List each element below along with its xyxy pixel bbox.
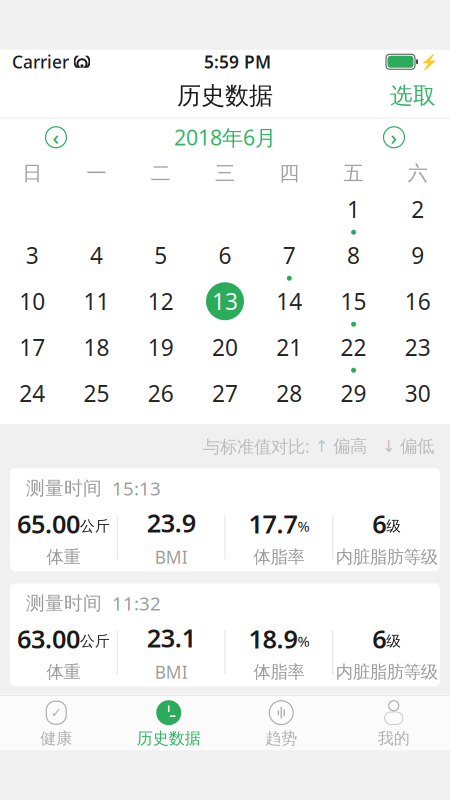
staticText: ↑ [310, 437, 333, 455]
button[interactable]: 27 [193, 374, 257, 420]
button[interactable]: 趋势 [225, 699, 337, 749]
staticText: 15 [341, 286, 367, 316]
staticText: 26 [148, 378, 174, 408]
button[interactable]: 13 [193, 282, 257, 328]
staticText: 我的 [378, 729, 410, 748]
staticText: 14 [276, 286, 302, 316]
staticText: Carrier [12, 50, 69, 73]
button[interactable]: 上个月 [42, 123, 70, 151]
staticText: 22 [341, 332, 367, 362]
button[interactable]: 22 [321, 328, 386, 374]
button[interactable]: 12 [129, 282, 193, 328]
staticText: 选取 [390, 82, 436, 110]
staticText: 5:59 PM [204, 50, 271, 73]
staticText: ✓ [51, 705, 62, 720]
staticText: 2018年6月 [174, 123, 276, 151]
staticText: › [390, 124, 397, 151]
staticText: 趋势 [265, 729, 297, 748]
staticText: BMI [155, 661, 188, 684]
staticText: 3 [26, 240, 39, 270]
staticText: 10 [19, 286, 45, 316]
button[interactable]: 28 [257, 374, 321, 420]
staticText: % [297, 516, 309, 536]
staticText: 六 [408, 161, 428, 186]
staticText: 30 [405, 378, 431, 408]
button[interactable]: 测量时间 [10, 468, 440, 571]
button[interactable]: 1 [321, 190, 386, 236]
staticText: 内脏脂肪等级 [336, 546, 438, 568]
staticText: 25 [83, 378, 109, 408]
staticText: 偏低 [400, 436, 434, 457]
button[interactable]: 我的 [337, 699, 450, 749]
button[interactable]: 测量时间 [10, 583, 440, 686]
staticText: 18 [83, 332, 109, 362]
staticText: 日 [22, 161, 42, 186]
staticText: 1 [347, 194, 360, 224]
button[interactable]: 20 [193, 328, 257, 374]
button[interactable]: 10 [0, 282, 64, 328]
button[interactable]: 历史数据 [112, 699, 225, 749]
staticText: 测量时间 [26, 592, 102, 615]
button[interactable]: 17 [0, 328, 64, 374]
staticText: 一 [86, 161, 106, 186]
button[interactable]: 选取 [376, 74, 450, 118]
button[interactable]: 9 [386, 236, 450, 282]
button[interactable]: 16 [386, 282, 450, 328]
staticText: BMI [155, 546, 188, 569]
staticText: 23.1 [147, 621, 196, 654]
staticText: 28 [276, 378, 302, 408]
button[interactable]: 23 [386, 328, 450, 374]
staticText: 体脂率 [253, 661, 304, 683]
button[interactable]: 26 [129, 374, 193, 420]
staticText: 体重 [46, 661, 80, 683]
button[interactable]: 8 [321, 236, 386, 282]
button[interactable]: 25 [64, 374, 129, 420]
staticText: 18.9 [248, 622, 297, 655]
staticText: 24 [19, 378, 45, 408]
staticText: ↓ [367, 437, 400, 455]
staticText: 21 [276, 332, 302, 362]
staticText: 11:32 [102, 591, 161, 616]
staticText: % [297, 631, 309, 651]
staticText: 五 [344, 161, 364, 186]
staticText: 5 [154, 240, 167, 270]
staticText: 内脏脂肪等级 [336, 661, 438, 683]
button[interactable]: ✓ [0, 699, 112, 749]
button[interactable]: 3 [0, 236, 64, 282]
button[interactable]: 7 [257, 236, 321, 282]
staticText: 15:13 [102, 476, 161, 501]
staticText: 9 [411, 240, 424, 270]
staticText: 四 [279, 161, 299, 186]
button[interactable]: 下个月 [380, 123, 408, 151]
button[interactable]: 14 [257, 282, 321, 328]
staticText: 与标准值对比: [203, 435, 310, 458]
staticText: 级 [386, 632, 401, 650]
staticText: 7 [283, 240, 296, 270]
staticText: 历史数据 [177, 81, 273, 110]
button[interactable]: 18 [64, 328, 129, 374]
button[interactable]: 30 [386, 374, 450, 420]
button[interactable]: 5 [129, 236, 193, 282]
staticText: 历史数据 [137, 729, 201, 748]
staticText: 体脂率 [253, 546, 304, 568]
button[interactable]: 29 [321, 374, 386, 420]
staticText: 63.00 [17, 622, 80, 655]
button[interactable]: 11 [64, 282, 129, 328]
staticText: 12 [148, 286, 174, 316]
staticText: 27 [212, 378, 238, 408]
staticText: 二 [151, 161, 171, 186]
button[interactable]: 2 [386, 190, 450, 236]
staticText: 11 [83, 286, 109, 316]
button[interactable]: 6 [193, 236, 257, 282]
button[interactable]: 24 [0, 374, 64, 420]
staticText: 19 [148, 332, 174, 362]
staticText: 公斤 [80, 517, 110, 535]
staticText: 13 [212, 286, 238, 316]
staticText: 级 [386, 517, 401, 535]
staticText: 公斤 [80, 632, 110, 650]
button[interactable]: 4 [64, 236, 129, 282]
button[interactable]: 21 [257, 328, 321, 374]
staticText: 6 [372, 622, 386, 655]
button[interactable]: 19 [129, 328, 193, 374]
button[interactable]: 15 [321, 282, 386, 328]
